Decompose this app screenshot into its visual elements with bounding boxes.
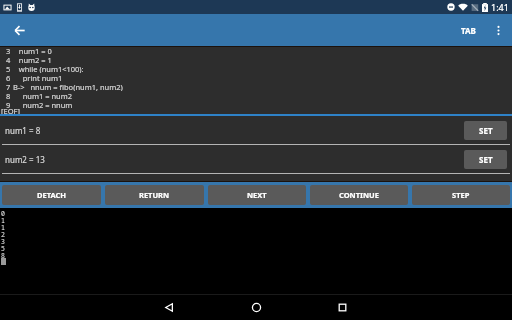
button[interactable]: STEP <box>412 185 510 205</box>
staticText: 5 <box>1 244 5 251</box>
staticText: 5 <box>6 64 11 73</box>
staticText: num1 = 8 <box>5 125 41 136</box>
button[interactable]: RETURN <box>105 185 204 205</box>
staticText: 9 <box>6 100 11 109</box>
staticText: num2 = nnum <box>11 100 73 109</box>
staticText: NEXT <box>247 190 267 200</box>
staticText: 3 <box>6 46 11 55</box>
staticText: DETACH <box>37 190 67 200</box>
button[interactable]: SET <box>464 121 507 140</box>
staticText: 8 <box>6 91 11 100</box>
staticText: 4 <box>6 55 11 64</box>
staticText: 0 <box>1 209 5 216</box>
button[interactable]: Back <box>5 16 33 44</box>
staticText: 1:41 <box>491 1 509 13</box>
staticText: num1 = 0 <box>11 46 52 55</box>
staticText: num2 = 1 <box>11 55 52 64</box>
button[interactable]: More options <box>484 16 512 44</box>
staticText: while (num1<100): <box>11 64 84 73</box>
staticText: RETURN <box>139 190 170 200</box>
button[interactable]: NEXT <box>208 185 306 205</box>
staticText: SET <box>479 125 493 136</box>
staticText: SET <box>479 154 493 165</box>
button[interactable]: SET <box>464 150 507 169</box>
staticText: CONTINUE <box>339 190 379 200</box>
staticText: STEP <box>452 190 470 200</box>
staticText: 1 <box>1 223 5 230</box>
staticText: 8 <box>1 251 5 258</box>
staticText: 7 <box>6 82 11 91</box>
staticText: 2 <box>1 230 5 237</box>
button[interactable]: Home <box>243 295 269 320</box>
staticText: num1 = num2 <box>11 91 73 100</box>
staticText: TAB <box>461 25 476 36</box>
button[interactable]: CONTINUE <box>310 185 408 205</box>
staticText: print num1 <box>11 73 63 82</box>
button[interactable]: Recents <box>329 295 355 320</box>
button[interactable]: TAB <box>453 18 484 43</box>
button[interactable]: DETACH <box>2 185 101 205</box>
staticText: B-> nnum = fibo(num1, num2) <box>11 82 123 91</box>
staticText: 1 <box>1 216 5 223</box>
staticText: 6 <box>6 73 11 82</box>
button[interactable]: Back <box>156 295 182 320</box>
staticText: num2 = 13 <box>5 154 45 165</box>
staticText: [EOF] <box>1 106 21 114</box>
staticText: 3 <box>1 237 5 244</box>
